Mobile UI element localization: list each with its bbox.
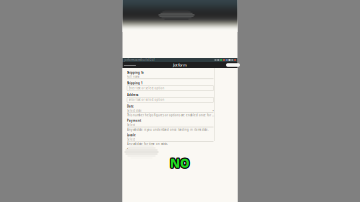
staticText: Any validate is you understand once land… — [127, 128, 209, 131]
staticText: NO — [170, 155, 190, 171]
staticText: Full name — [127, 75, 140, 78]
staticText: Shipping 1 — [127, 81, 143, 85]
staticText: NO — [171, 154, 191, 170]
button[interactable]: Date — [127, 105, 213, 117]
staticText: NO — [171, 155, 191, 171]
staticText: NO — [170, 156, 190, 172]
button[interactable]: Account — [226, 63, 240, 67]
staticText: Payment — [127, 119, 141, 122]
staticText: Enter text or select option — [129, 98, 165, 101]
staticText: Address — [127, 93, 138, 97]
button[interactable]: Payment — [127, 119, 213, 131]
button[interactable]: Shipping 1 — [127, 82, 213, 91]
staticText: Jotform — [173, 62, 187, 68]
button[interactable]: Shipping To — [127, 71, 213, 79]
staticText: NO — [169, 156, 189, 172]
staticText: Locale — [127, 133, 136, 137]
staticText: Any validate for time on exists. — [127, 142, 168, 146]
staticText: Enter text or select option — [129, 86, 165, 90]
button[interactable]: Locale — [127, 134, 213, 145]
staticText: NO — [170, 154, 190, 170]
staticText: NO — [169, 154, 189, 170]
staticText: Select — [127, 138, 135, 141]
staticText: ▾ — [212, 109, 213, 112]
staticText: Details — [127, 148, 137, 152]
staticText: Date — [127, 105, 134, 108]
staticText: Select — [127, 123, 135, 127]
staticText: jotform.com/build/241 — [124, 58, 156, 62]
button[interactable]: Address — [127, 93, 213, 102]
staticText: This number helps figures or options are… — [127, 113, 213, 117]
staticText: NO — [171, 156, 191, 172]
staticText: Shipping To — [127, 71, 144, 74]
staticText: Select date — [127, 109, 142, 112]
staticText: NO — [169, 155, 189, 171]
